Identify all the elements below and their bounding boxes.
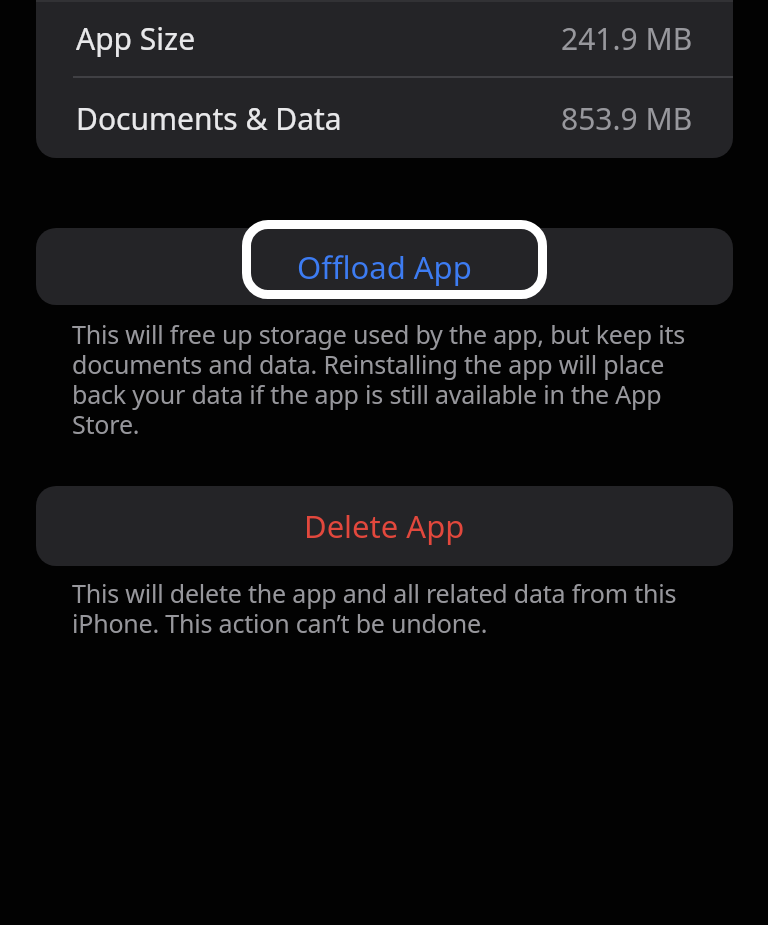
- staticText: 241.9 MB: [561, 18, 693, 59]
- button[interactable]: Offload App: [36, 228, 733, 305]
- staticText: Documents & Data: [76, 98, 342, 139]
- staticText: Delete App: [304, 505, 465, 547]
- button[interactable]: Delete App: [36, 486, 733, 566]
- staticText: This will delete the app and all related…: [72, 576, 677, 640]
- button[interactable]: Documents & Data: [36, 78, 733, 158]
- staticText: This will free up storage used by the ap…: [72, 317, 685, 441]
- staticText: App Size: [76, 18, 196, 59]
- staticText: 853.9 MB: [561, 98, 693, 139]
- button[interactable]: App Size: [36, 0, 733, 77]
- staticText: Offload App: [297, 246, 472, 288]
